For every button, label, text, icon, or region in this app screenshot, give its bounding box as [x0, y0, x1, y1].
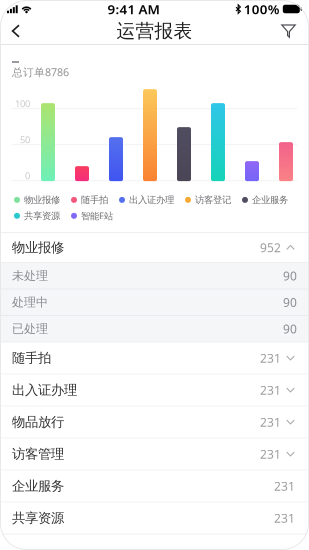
staticText: 企业服务 [12, 478, 64, 494]
staticText: 物品放行 [12, 414, 64, 430]
button[interactable]: 企业服务 [0, 470, 309, 502]
staticText: 231 [260, 350, 281, 366]
staticText: 100% [244, 0, 280, 18]
staticText: 952 [260, 240, 281, 255]
staticText: 231 [274, 510, 295, 526]
staticText: 企业服务 [252, 194, 288, 206]
button[interactable]: 出入证办理 [0, 374, 309, 406]
staticText: 231 [274, 478, 295, 494]
staticText: 共享资源 [24, 210, 60, 222]
staticText: 9:41 AM [107, 0, 159, 18]
staticText: 总订单8786 [12, 65, 69, 79]
staticText: 已处理 [12, 321, 48, 336]
button[interactable]: Back [0, 18, 35, 44]
button[interactable]: 随手拍 [0, 342, 309, 374]
staticText: 随手拍 [12, 350, 51, 366]
staticText: 231 [260, 414, 281, 430]
staticText: 物业报修 [12, 239, 64, 256]
staticText: 访客登记 [195, 194, 231, 206]
staticText: 50 [20, 133, 30, 146]
staticText: 运营报表 [116, 19, 192, 42]
staticText: 100 [15, 97, 30, 110]
staticText: 0 [25, 169, 30, 182]
staticText: 智能E站 [81, 210, 113, 222]
staticText: 物业报修 [24, 194, 60, 206]
staticText: 90 [283, 294, 297, 310]
staticText: 90 [283, 321, 297, 337]
staticText: 共享资源 [12, 510, 64, 526]
staticText: 90 [283, 268, 297, 284]
staticText: 随手拍 [81, 194, 108, 206]
staticText: 处理中 [12, 295, 48, 310]
button[interactable]: 共享资源 [0, 502, 309, 534]
button[interactable]: 物业报修 [0, 233, 309, 263]
staticText: 未处理 [12, 268, 48, 283]
staticText: 231 [260, 382, 281, 398]
staticText: 231 [260, 446, 281, 462]
staticText: 出入证办理 [129, 194, 174, 206]
button[interactable]: Filter [267, 18, 309, 44]
staticText: 访客管理 [12, 446, 64, 462]
button[interactable]: 访客管理 [0, 438, 309, 470]
button[interactable]: 物品放行 [0, 406, 309, 438]
staticText: 出入证办理 [12, 382, 77, 398]
